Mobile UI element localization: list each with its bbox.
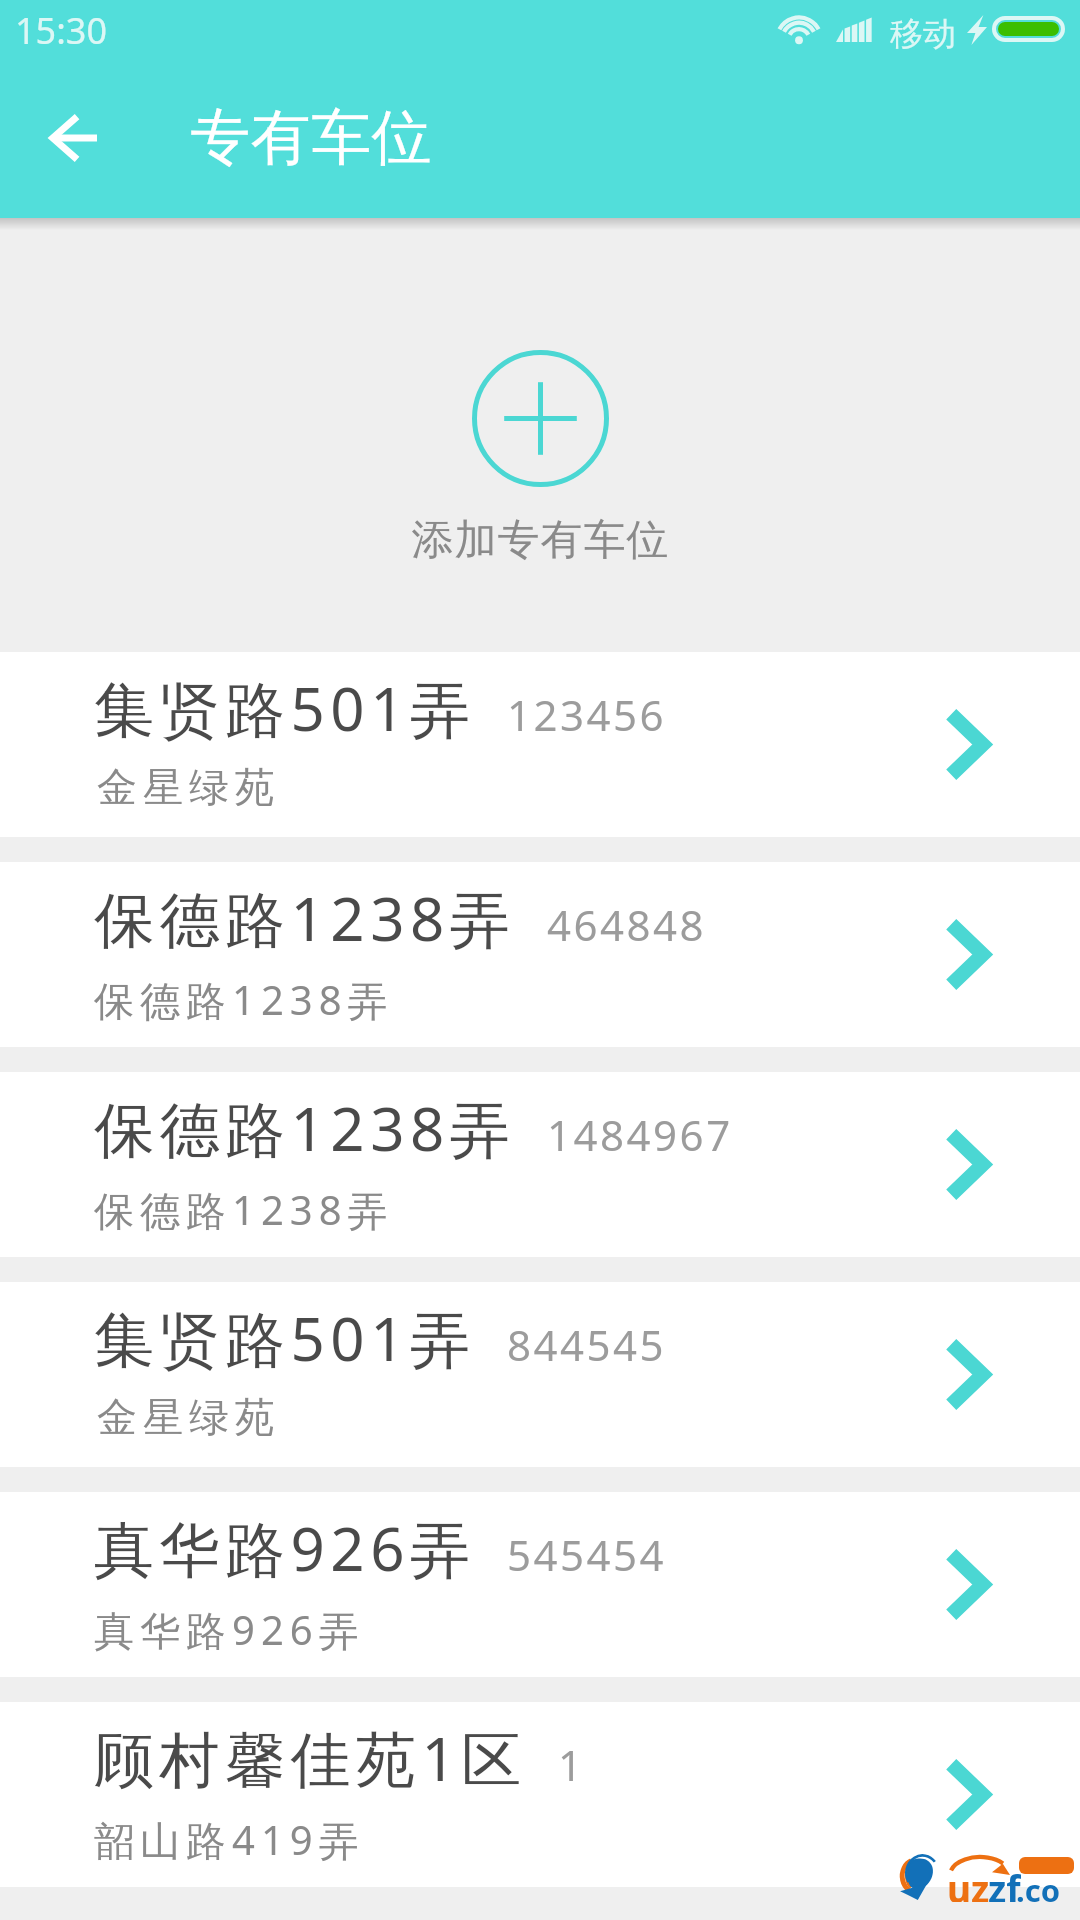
staticText: 金星绿苑 [94,1392,278,1442]
staticText: 真华路926弄 [94,1602,365,1657]
staticText: 15:30 [15,6,108,55]
staticText: .com [1016,1869,1074,1902]
staticText: 集贤路501弄 [94,667,476,749]
staticText: 真华路926弄 [94,1507,476,1589]
staticText: 韶山路419弄 [94,1812,365,1867]
staticText: 123456 [507,686,667,743]
staticText: 金星绿苑 [94,762,278,812]
staticText: 移动 [890,13,956,55]
button[interactable]: 集贤路501弄 [0,1282,1080,1467]
button[interactable]: 保德路1238弄 [0,862,1080,1047]
staticText: 保德路1238弄 [94,1087,516,1169]
staticText: 545454 [507,1526,667,1583]
staticText: zf [988,1863,1021,1902]
staticText: 保德路1238弄 [94,877,516,959]
staticText: 添加专有车位 [411,514,669,567]
staticText: 1484967 [547,1106,733,1163]
button[interactable]: 真华路926弄 [0,1492,1080,1677]
staticText: 1 [558,1736,585,1793]
staticText: 保德路1238弄 [94,972,394,1027]
button[interactable]: Back [28,93,118,183]
button[interactable]: 集贤路501弄 [0,652,1080,837]
staticText: 专有车位 [190,100,432,176]
button[interactable]: 添加专有车位 [411,350,669,567]
staticText: 464848 [547,896,707,953]
button[interactable]: 保德路1238弄 [0,1072,1080,1257]
staticText: 保德路1238弄 [94,1182,394,1237]
staticText: 844545 [507,1316,667,1373]
staticText: uz [947,1863,990,1902]
staticText: 集贤路501弄 [94,1297,476,1379]
staticText: 顾村馨佳苑1区 [94,1717,527,1799]
button[interactable]: 顾村馨佳苑1区 [0,1702,1080,1887]
